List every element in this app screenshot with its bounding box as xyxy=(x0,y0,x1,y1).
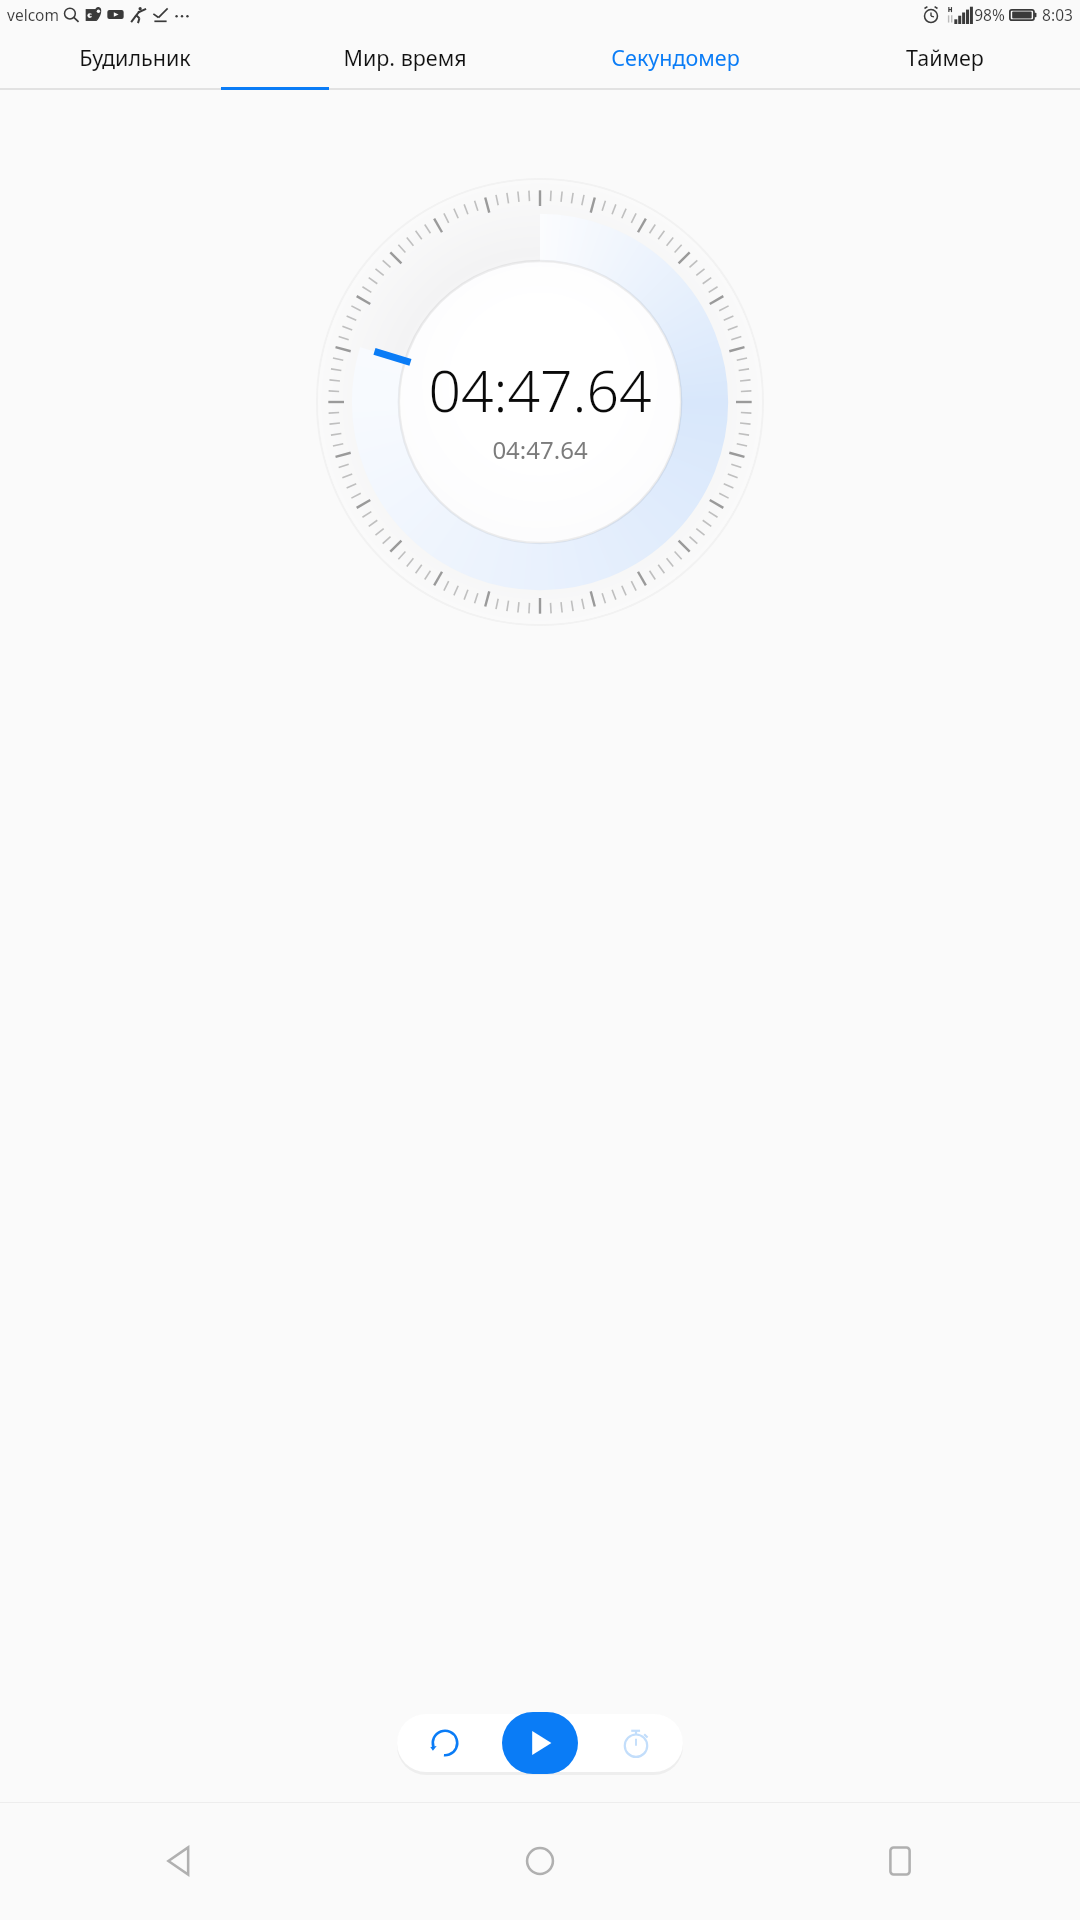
button[interactable]: Reset xyxy=(397,1714,493,1772)
button[interactable]: Будильник xyxy=(0,28,270,86)
staticText: Секундомер xyxy=(611,43,740,72)
button[interactable]: Lap xyxy=(588,1714,683,1772)
staticText: Таймер xyxy=(906,43,984,72)
staticText: 04:47.64 xyxy=(428,351,652,429)
button[interactable]: Recents xyxy=(720,1802,1080,1920)
button[interactable]: Back xyxy=(0,1802,360,1920)
staticText: Мир. время xyxy=(343,43,467,72)
button[interactable]: Start xyxy=(502,1712,578,1774)
staticText: 98% xyxy=(974,4,1005,25)
button[interactable]: Мир. время xyxy=(270,28,540,86)
button[interactable]: Секундомер xyxy=(540,28,810,86)
button[interactable]: Таймер xyxy=(810,28,1080,86)
staticText: Будильник xyxy=(79,43,191,72)
button[interactable]: Home xyxy=(360,1802,720,1920)
staticText: 8:03 xyxy=(1042,4,1073,25)
staticText: 04:47.64 xyxy=(492,433,588,466)
staticText: velcom xyxy=(7,4,59,25)
